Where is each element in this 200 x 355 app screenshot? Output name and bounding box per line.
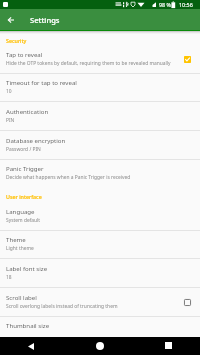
- button[interactable]: Back: [23, 339, 38, 354]
- staticText: [6, 331, 194, 338]
- staticText: User interface: [6, 193, 42, 200]
- button[interactable]: Timeout for tap to reveal: [0, 73, 200, 102]
- staticText: Light theme: [6, 245, 194, 252]
- staticText: Panic Trigger: [6, 164, 194, 172]
- staticText: 18: [6, 274, 194, 281]
- button[interactable]: Authentication: [0, 102, 200, 131]
- button[interactable]: Database encryption: [0, 131, 200, 160]
- staticText: Database encryption: [6, 136, 194, 144]
- button[interactable]: Panic Trigger: [0, 159, 200, 188]
- button[interactable]: Tap to reveal: [0, 45, 200, 74]
- staticText: Decide what happens when a Panic Trigger…: [6, 174, 194, 181]
- button[interactable]: Recent apps: [161, 338, 176, 353]
- staticText: Language: [6, 207, 194, 215]
- staticText: PIN: [6, 117, 194, 124]
- staticText: Password / PIN: [6, 146, 194, 153]
- staticText: Hide the OTP tokens by default, requirin…: [6, 60, 180, 67]
- button[interactable]: Home: [92, 338, 107, 353]
- staticText: Scroll overlong labels instead of trunca…: [6, 303, 180, 310]
- staticText: Authentication: [6, 107, 194, 115]
- staticText: Theme: [6, 235, 194, 243]
- staticText: 98 %: [159, 1, 172, 8]
- staticText: Security: [6, 37, 27, 44]
- staticText: Scroll label: [6, 293, 180, 301]
- staticText: Settings: [30, 15, 60, 25]
- staticText: 10:56: [179, 1, 193, 8]
- button[interactable]: Label font size: [0, 259, 200, 288]
- button[interactable]: Scroll label: [0, 288, 200, 317]
- staticText: Timeout for tap to reveal: [6, 78, 194, 86]
- button[interactable]: Language: [0, 202, 200, 231]
- staticText: System default: [6, 217, 194, 224]
- staticText: Label font size: [6, 264, 194, 272]
- button[interactable]: Navigate up: [3, 12, 19, 28]
- button[interactable]: Thumbnail size: [0, 316, 200, 345]
- staticText: 10: [6, 88, 194, 95]
- staticText: Thumbnail size: [6, 321, 194, 329]
- button[interactable]: Theme: [0, 230, 200, 259]
- staticText: Tap to reveal: [6, 50, 180, 58]
